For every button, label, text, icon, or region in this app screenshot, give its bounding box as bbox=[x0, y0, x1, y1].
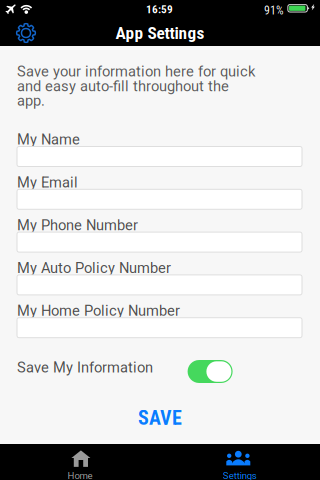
staticText: My Email bbox=[17, 174, 78, 191]
staticText: My Auto Policy Number bbox=[17, 259, 171, 277]
staticText: and easy auto-fill throughout the bbox=[17, 78, 229, 95]
staticText: Save My Information bbox=[17, 359, 153, 376]
staticText: Home bbox=[67, 470, 92, 480]
button[interactable]: Settings bbox=[0, 20, 52, 46]
staticText: 16:59 bbox=[146, 3, 173, 16]
button[interactable]: SAVE bbox=[130, 408, 190, 428]
staticText: Settings bbox=[223, 470, 257, 480]
staticText: My Name bbox=[17, 131, 80, 148]
staticText: SAVE bbox=[138, 406, 182, 430]
staticText: App Settings bbox=[115, 23, 204, 43]
staticText: My Phone Number bbox=[17, 217, 138, 234]
staticText: Save your information here for quick bbox=[17, 63, 255, 80]
staticText: app. bbox=[17, 92, 45, 109]
staticText: My Home Policy Number bbox=[17, 302, 180, 319]
button[interactable]: Save My Information bbox=[188, 360, 233, 383]
button[interactable]: Home bbox=[0, 444, 160, 480]
button[interactable]: Settings bbox=[160, 444, 320, 480]
staticText: 91% bbox=[264, 3, 284, 17]
